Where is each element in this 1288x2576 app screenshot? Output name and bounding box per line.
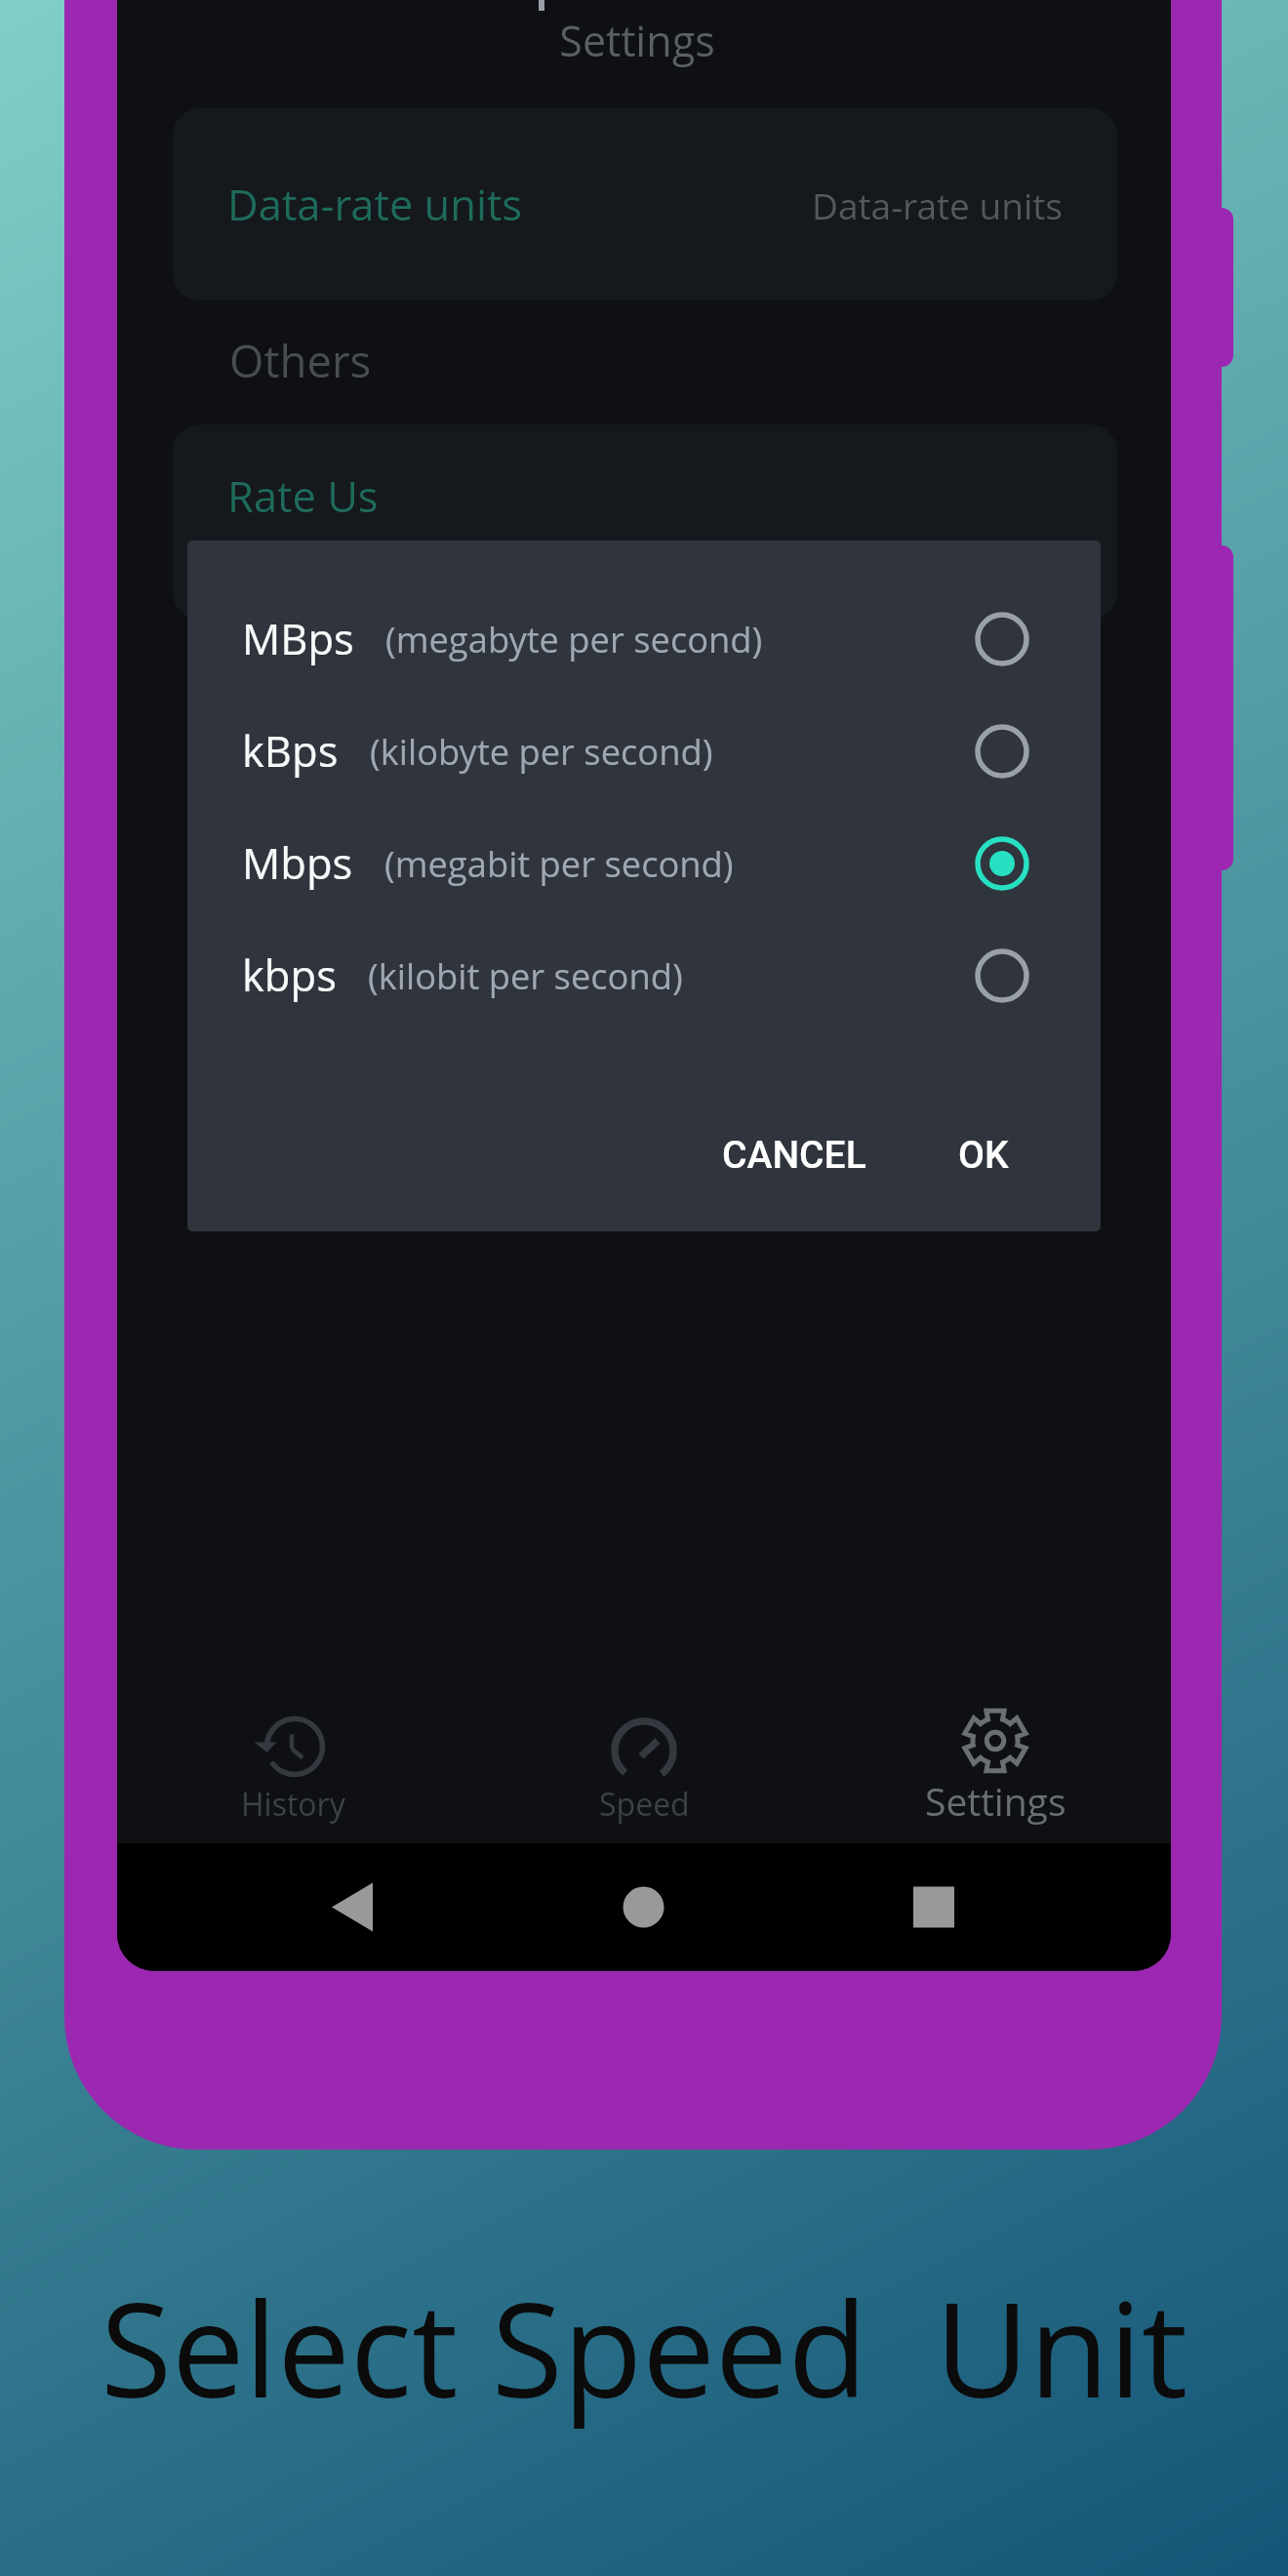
button[interactable]: OK bbox=[935, 1117, 1032, 1193]
staticText: kBps bbox=[242, 722, 339, 780]
button[interactable]: kBps bbox=[187, 695, 1101, 807]
staticText: MBps bbox=[242, 610, 354, 667]
other: Speed test bbox=[605, 1711, 683, 1790]
button[interactable]: Rate Us bbox=[173, 424, 1117, 620]
staticText: (megabyte per second) bbox=[385, 615, 763, 663]
staticText: Settings bbox=[559, 12, 715, 69]
other: Settings bbox=[956, 1702, 1034, 1780]
staticText: OK bbox=[958, 1133, 1009, 1178]
staticText: (kilobyte per second) bbox=[370, 727, 713, 775]
staticText: Select Speed Unit bbox=[0, 2259, 1288, 2435]
staticText: (kilobit per second) bbox=[368, 951, 683, 999]
other: History bbox=[256, 1708, 334, 1786]
staticText: Mbps bbox=[242, 834, 353, 892]
staticText: (megabit per second) bbox=[384, 839, 734, 887]
button[interactable]: kbps bbox=[187, 919, 1101, 1031]
staticText: CANCEL bbox=[722, 1133, 866, 1178]
button[interactable]: Mbps bbox=[187, 807, 1101, 919]
button[interactable]: Data-rate units bbox=[173, 108, 1117, 301]
staticText: History bbox=[241, 1783, 345, 1826]
staticText: Settings bbox=[925, 1775, 1067, 1827]
staticText: Data-rate units bbox=[812, 181, 1063, 229]
button[interactable]: Speed test bbox=[468, 1696, 820, 1843]
button[interactable]: Settings bbox=[820, 1696, 1171, 1843]
staticText: Others bbox=[229, 330, 372, 390]
staticText: kbps bbox=[242, 946, 337, 1004]
button[interactable]: Recent apps bbox=[865, 1843, 1002, 1971]
staticText: Rate Us bbox=[227, 467, 379, 525]
button[interactable]: Home bbox=[576, 1843, 712, 1971]
staticText: Data-rate units bbox=[227, 176, 523, 233]
staticText: Speed bbox=[599, 1783, 690, 1826]
button[interactable]: Back bbox=[284, 1843, 421, 1971]
button[interactable]: History bbox=[117, 1696, 468, 1843]
button[interactable]: CANCEL bbox=[699, 1117, 890, 1193]
button[interactable]: MBps bbox=[187, 583, 1101, 695]
staticText: If you like us, please take a moment to … bbox=[227, 533, 938, 581]
